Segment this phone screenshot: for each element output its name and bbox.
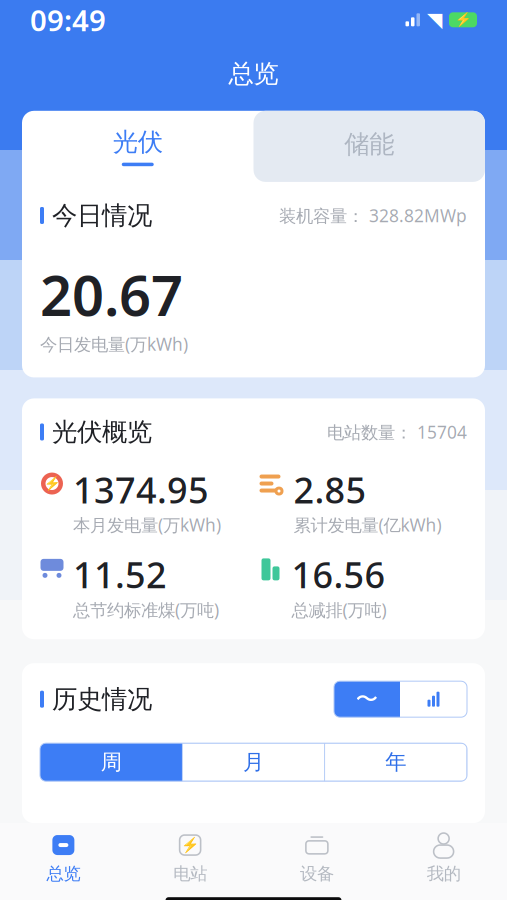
staticText: 09:49 bbox=[30, 0, 106, 39]
staticText: 我的 bbox=[427, 863, 461, 884]
staticText: 〜 bbox=[355, 685, 378, 713]
staticText: 今日发电量(万kWh) bbox=[40, 332, 188, 355]
staticText: ◥ bbox=[427, 8, 442, 31]
staticText: 今日情况 bbox=[52, 200, 152, 231]
button[interactable]: 年 bbox=[325, 743, 467, 781]
staticText: 历史情况 bbox=[52, 684, 152, 715]
button[interactable]: 光伏 bbox=[22, 113, 253, 180]
staticText: ⚡ bbox=[43, 476, 60, 491]
staticText: 总览 bbox=[228, 58, 278, 89]
staticText: 电站数量： 15704 bbox=[327, 420, 467, 443]
staticText: 总览 bbox=[46, 863, 80, 884]
staticText: 1374.95 bbox=[73, 465, 209, 513]
button[interactable]: ⚡ bbox=[127, 826, 254, 884]
staticText: 11.52 bbox=[73, 550, 167, 598]
staticText: 总节约标准煤(万吨) bbox=[73, 598, 219, 621]
staticText: 光伏概览 bbox=[52, 416, 152, 447]
button[interactable]: 柱状图 bbox=[400, 681, 467, 717]
button[interactable]: 总览 bbox=[0, 826, 127, 884]
staticText: 设备 bbox=[300, 863, 334, 884]
button[interactable]: 储能 bbox=[253, 111, 485, 182]
staticText: 累计发电量(亿kWh) bbox=[293, 513, 441, 536]
button[interactable]: 月 bbox=[182, 743, 325, 781]
button[interactable]: 周 bbox=[40, 743, 182, 781]
staticText: 周 bbox=[101, 749, 122, 775]
button[interactable]: 我的 bbox=[380, 826, 507, 884]
staticText: ⚡ bbox=[181, 837, 199, 853]
button[interactable]: 设备 bbox=[253, 826, 380, 884]
staticText: 16.56 bbox=[291, 550, 385, 598]
button[interactable]: 折线图 bbox=[334, 681, 400, 717]
staticText: 2.85 bbox=[293, 465, 366, 513]
staticText: 本月发电量(万kWh) bbox=[73, 513, 221, 536]
staticText: ⚡ bbox=[454, 12, 471, 27]
staticText: 电站 bbox=[173, 863, 207, 884]
staticText: 20.67 bbox=[40, 257, 183, 331]
staticText: 年 bbox=[385, 749, 406, 775]
staticText: 装机容量： 328.82MWp bbox=[279, 204, 467, 227]
staticText: 光伏 bbox=[113, 127, 163, 158]
staticText: 总减排(万吨) bbox=[291, 598, 386, 621]
staticText: 月 bbox=[243, 749, 264, 775]
staticText: 储能 bbox=[344, 129, 394, 160]
